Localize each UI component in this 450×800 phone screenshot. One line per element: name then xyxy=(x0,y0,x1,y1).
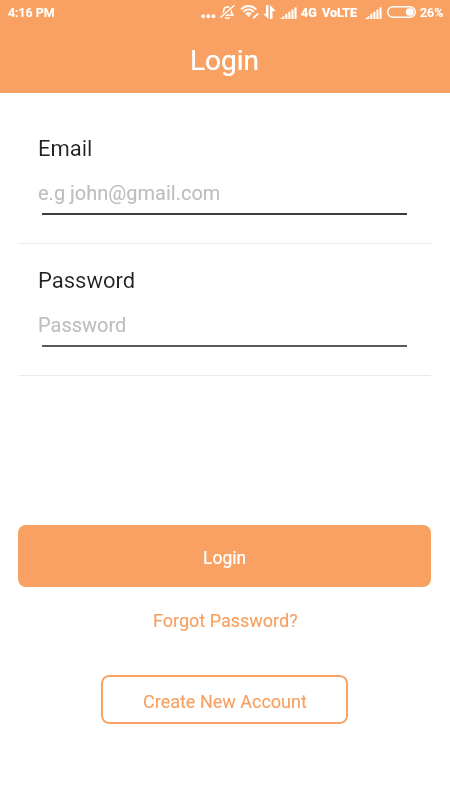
staticText: 4G xyxy=(301,5,317,20)
staticText: Login xyxy=(203,548,247,569)
staticText: 4:16 PM xyxy=(8,5,55,20)
staticText: Password xyxy=(38,313,127,336)
staticText: VoLTE xyxy=(322,5,358,20)
staticText: Create New Account xyxy=(143,691,307,712)
button[interactable]: Password xyxy=(38,313,407,348)
staticText: Email xyxy=(38,136,93,162)
button[interactable]: Login xyxy=(18,525,431,587)
staticText: Forgot Password? xyxy=(153,610,298,631)
button[interactable]: Forgot Password? xyxy=(0,603,450,639)
staticText: 26% xyxy=(420,5,444,20)
staticText: e.g john@gmail.com xyxy=(38,181,221,204)
staticText: Password xyxy=(38,268,136,294)
button[interactable]: Create New Account xyxy=(101,675,348,724)
staticText: Login xyxy=(190,44,260,77)
button[interactable]: e.g john@gmail.com xyxy=(38,181,407,216)
